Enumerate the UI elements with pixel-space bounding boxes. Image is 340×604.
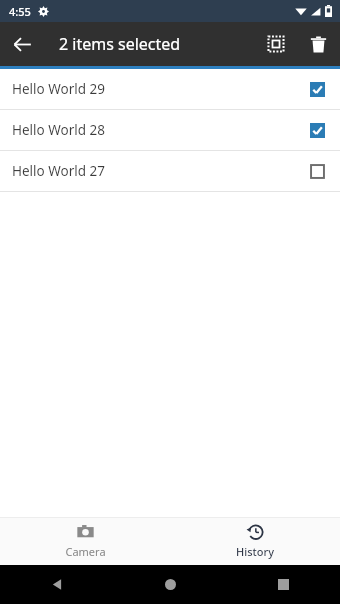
button[interactable]: History — [170, 517, 340, 565]
button[interactable]: Checked — [306, 78, 328, 100]
staticText: 4:55 — [9, 4, 31, 19]
staticText: History — [236, 544, 274, 559]
button[interactable]: Unchecked — [306, 160, 328, 182]
staticText: Hello World 29 — [12, 80, 106, 98]
button[interactable]: Select all — [256, 24, 296, 64]
button[interactable]: Hello World 28 — [0, 110, 340, 150]
button[interactable]: Checked — [306, 119, 328, 141]
button[interactable]: Delete — [296, 22, 340, 66]
button[interactable]: Camera — [0, 517, 170, 565]
staticText: Camera — [65, 544, 106, 559]
button[interactable]: Back — [4, 26, 40, 62]
staticText: Hello World 27 — [12, 162, 106, 180]
button[interactable]: Hello World 27 — [0, 151, 340, 191]
staticText: Hello World 28 — [12, 121, 106, 139]
button[interactable]: Hello World 29 — [0, 69, 340, 109]
staticText: 2 items selected — [59, 33, 181, 55]
